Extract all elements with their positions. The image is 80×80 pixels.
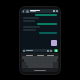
button[interactable] <box>22 49 53 52</box>
button[interactable] <box>37 23 57 25</box>
button[interactable] <box>37 55 44 56</box>
button[interactable] <box>47 55 54 56</box>
button[interactable] <box>51 40 57 46</box>
button[interactable] <box>26 55 33 56</box>
button[interactable]: Back <box>22 10 25 13</box>
button[interactable]: Send <box>54 49 58 52</box>
button[interactable] <box>39 32 57 34</box>
button[interactable]: Back <box>21 9 59 13</box>
button[interactable]: Video call <box>53 10 55 12</box>
button[interactable] <box>35 14 57 16</box>
